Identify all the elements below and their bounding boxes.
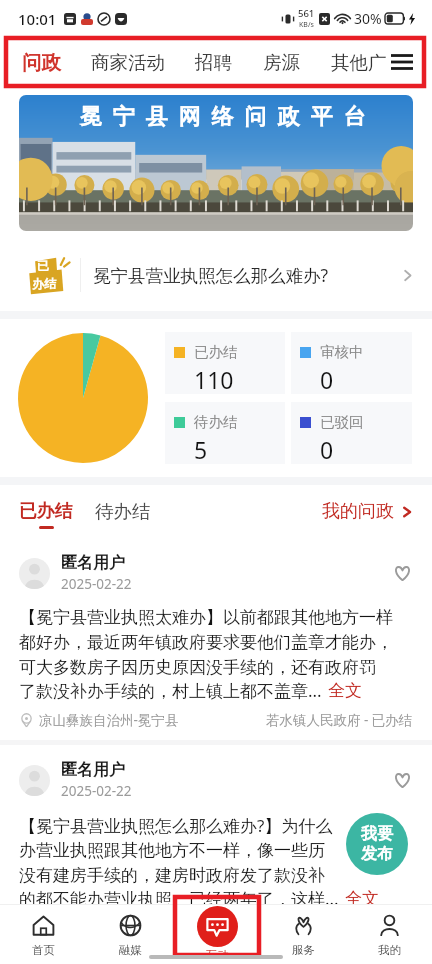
staticText: 办结 [32,276,56,291]
button[interactable]: 首页 [0,904,87,956]
button[interactable]: Like [391,769,413,791]
staticText: 30% [354,9,382,28]
staticText: 已驳回 [320,413,364,431]
staticText: 冕宁县网络问政平台 [74,103,371,131]
staticText: 问政 [22,50,61,75]
button[interactable]: 问政 [22,50,61,75]
button[interactable]: 互动 [174,904,260,956]
staticText: 发布 [361,844,393,864]
button[interactable]: 匿名用户 [0,544,432,740]
staticText: 我的问政 [322,500,394,523]
staticText: 互动 [206,948,229,956]
staticText: 【冕宁县营业执照怎么那么难办?】为什么 办营业执照跟其他地方不一样，像一些历 没… [19,814,333,886]
staticText: 若水镇人民政府 - 已办结 [266,711,413,729]
button[interactable]: 冕宁县网络问政平台 [19,95,413,231]
staticText: 招聘 [195,51,232,74]
staticText: 匿名用户 [61,553,125,573]
staticText: 【冕宁县营业执照太难办】以前都跟其他地方一样 都好办，最近两年镇政府要求要他们盖… [19,607,393,678]
button[interactable]: 待办结 [165,402,285,464]
button[interactable]: Like [391,562,413,584]
staticText: 融媒 [119,943,142,956]
staticText: 2025-02-22 [61,575,132,593]
staticText: 了款没补办手续的，村上镇上都不盖章... [19,679,322,702]
staticText: 冕宁县营业执照怎么那么难办? [93,263,399,287]
button[interactable]: 审核中 [291,332,412,394]
button[interactable]: 已办结 [165,332,285,394]
other: Open [399,267,416,284]
staticText: 0 [320,434,334,464]
staticText: 5 [194,434,208,464]
staticText: 10:01 [18,9,57,29]
staticText: 我的 [378,943,401,956]
staticText: 房源 [263,51,300,74]
staticText: 已 [37,258,49,273]
staticText: 2025-02-22 [61,782,132,800]
staticText: 已办结 [19,500,73,522]
staticText: 匿名用户 [61,760,125,780]
staticText: 商家活动 [91,51,165,74]
staticText: 服务 [292,943,315,956]
button[interactable]: 我的 [346,904,432,956]
button[interactable]: 商家活动 [91,51,165,74]
staticText: 已办结 [194,343,238,361]
button[interactable]: 其他广 [331,51,387,74]
staticText: 561 [298,7,315,20]
staticText: 待办结 [194,413,238,431]
button[interactable]: 已办结 [19,500,73,529]
button[interactable]: 已 [0,239,432,311]
staticText: 我要 [361,824,393,844]
button[interactable]: 融媒 [87,904,174,956]
staticText: 审核中 [320,343,364,361]
staticText: 全文 [345,888,379,909]
button[interactable]: 我要 [346,813,408,875]
button[interactable]: 我的问政 [322,500,414,530]
staticText: 的都不能办营业执照。已经两年了，这样... [19,887,339,910]
staticText: 首页 [32,943,55,956]
button[interactable]: 待办结 [95,500,151,530]
button[interactable]: 已驳回 [291,402,412,464]
button[interactable]: 服务 [260,904,346,956]
button[interactable]: 全文 [345,888,379,909]
button[interactable]: 招聘 [195,51,232,74]
staticText: 0 [320,364,334,394]
staticText: 待办结 [95,500,151,523]
staticText: 全文 [328,680,362,701]
button[interactable]: 匿名用户 [0,745,432,910]
staticText: 110 [194,364,234,394]
staticText: 凉山彝族自治州-冕宁县 [39,711,179,729]
button[interactable]: Menu [389,49,415,75]
button[interactable]: 房源 [263,51,300,74]
staticText: 其他广 [331,51,387,74]
button[interactable]: 全文 [328,680,362,701]
staticText: KB/s [299,20,314,30]
